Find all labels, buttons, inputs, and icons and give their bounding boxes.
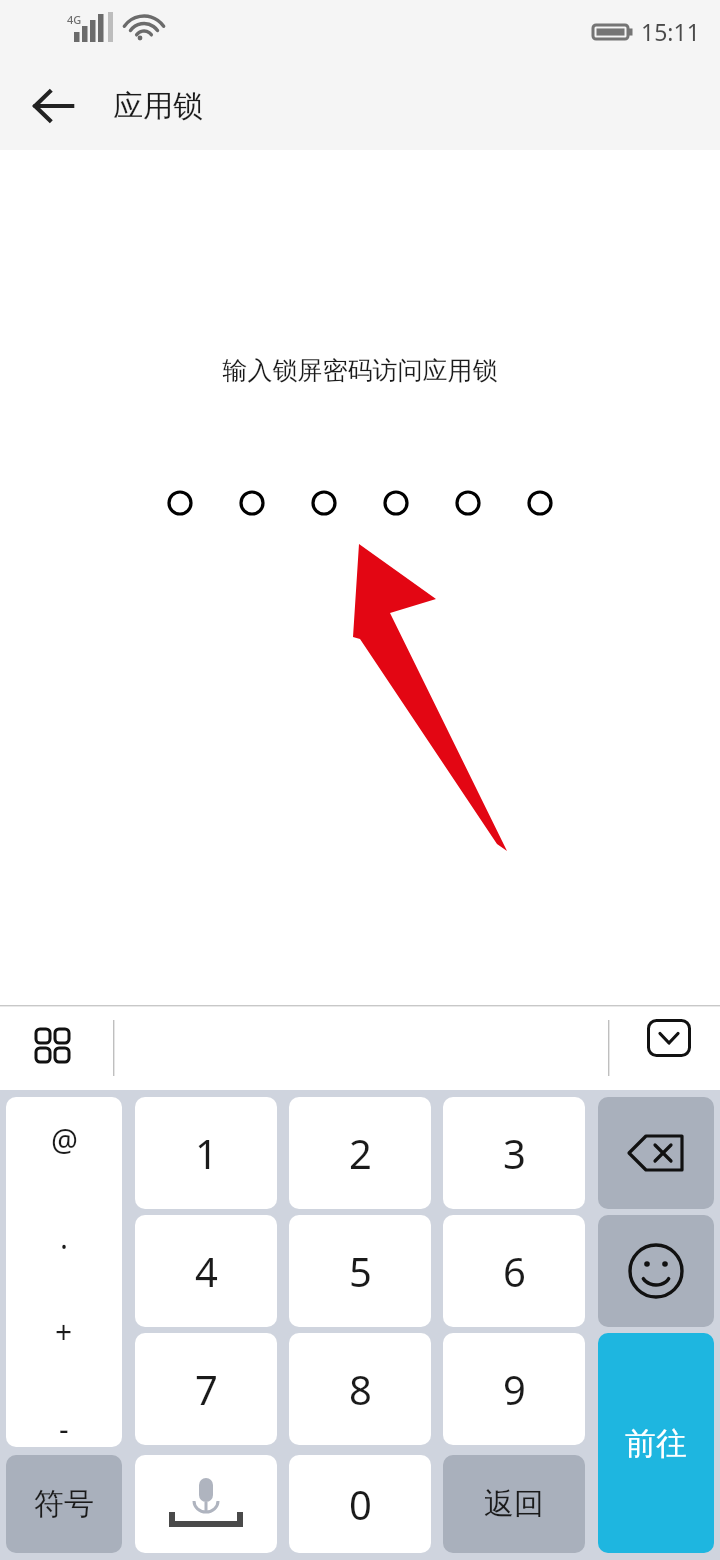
button[interactable]: 0 <box>289 1455 431 1553</box>
staticText: 5 <box>349 1244 372 1298</box>
button[interactable]: 5 <box>289 1215 431 1327</box>
button[interactable]: 8 <box>289 1333 431 1445</box>
button[interactable]: Space <box>135 1455 277 1553</box>
staticText: - <box>59 1408 69 1447</box>
button[interactable]: 4 <box>135 1215 277 1327</box>
button[interactable]: 7 <box>135 1333 277 1445</box>
staticText: 6 <box>503 1244 526 1298</box>
staticText: 前往 <box>625 1424 687 1463</box>
button[interactable]: 前往 <box>598 1333 714 1553</box>
button[interactable]: Hide keyboard <box>646 1018 692 1058</box>
button[interactable]: Emoji <box>598 1215 714 1327</box>
staticText: + <box>55 1311 73 1352</box>
button[interactable]: Backspace <box>598 1097 714 1209</box>
button[interactable]: 3 <box>443 1097 585 1209</box>
button[interactable]: 6 <box>443 1215 585 1327</box>
button[interactable]: Back <box>20 73 86 139</box>
staticText: 4G <box>67 12 82 27</box>
staticText: @ <box>51 1119 78 1160</box>
staticText: 7 <box>195 1362 218 1416</box>
button[interactable]: 1 <box>135 1097 277 1209</box>
staticText: 输入锁屏密码访问应用锁 <box>0 355 720 386</box>
staticText: 15:11 <box>641 16 700 47</box>
staticText: 返回 <box>484 1485 544 1523</box>
button[interactable]: 符号 <box>6 1455 122 1553</box>
staticText: 3 <box>503 1126 526 1180</box>
staticText: 8 <box>349 1362 372 1416</box>
button[interactable]: 2 <box>289 1097 431 1209</box>
staticText: 4 <box>195 1244 218 1298</box>
staticText: · <box>60 1226 69 1267</box>
staticText: 2 <box>349 1126 372 1180</box>
button[interactable]: Keyboard layouts <box>26 1019 82 1075</box>
staticText: 0 <box>349 1477 372 1531</box>
staticText: 1 <box>195 1126 218 1180</box>
button[interactable]: 返回 <box>443 1455 585 1553</box>
button[interactable]: 9 <box>443 1333 585 1445</box>
staticText: 应用锁 <box>113 87 203 125</box>
button[interactable]: Symbols column <box>6 1097 122 1447</box>
staticText: 符号 <box>34 1485 94 1523</box>
staticText: 9 <box>503 1362 526 1416</box>
